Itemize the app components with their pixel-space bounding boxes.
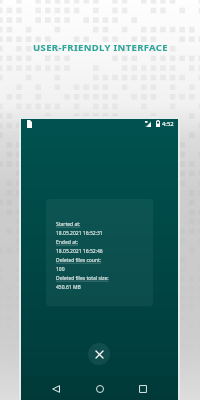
staticText: Deleted files count: (56, 257, 102, 264)
button[interactable]: Close (88, 343, 110, 365)
staticText: 18.05.2021 16:52:31 (56, 230, 103, 237)
button[interactable]: Recents (132, 376, 154, 400)
staticText: Ended at: (56, 239, 79, 246)
staticText: USER-FRIENDLY INTERFACE (33, 41, 168, 54)
staticText: 100 (56, 266, 65, 273)
button[interactable]: Home (89, 376, 111, 400)
staticText: 4:52 (162, 120, 174, 128)
staticText: Started at: (56, 221, 81, 228)
staticText: 450.61 MB (56, 284, 81, 291)
staticText: 18.05.2021 16:52:46 (56, 248, 103, 255)
button[interactable]: Started at: (46, 199, 153, 306)
staticText: Deleted files total size: (56, 275, 109, 282)
button[interactable]: Back (45, 376, 67, 400)
